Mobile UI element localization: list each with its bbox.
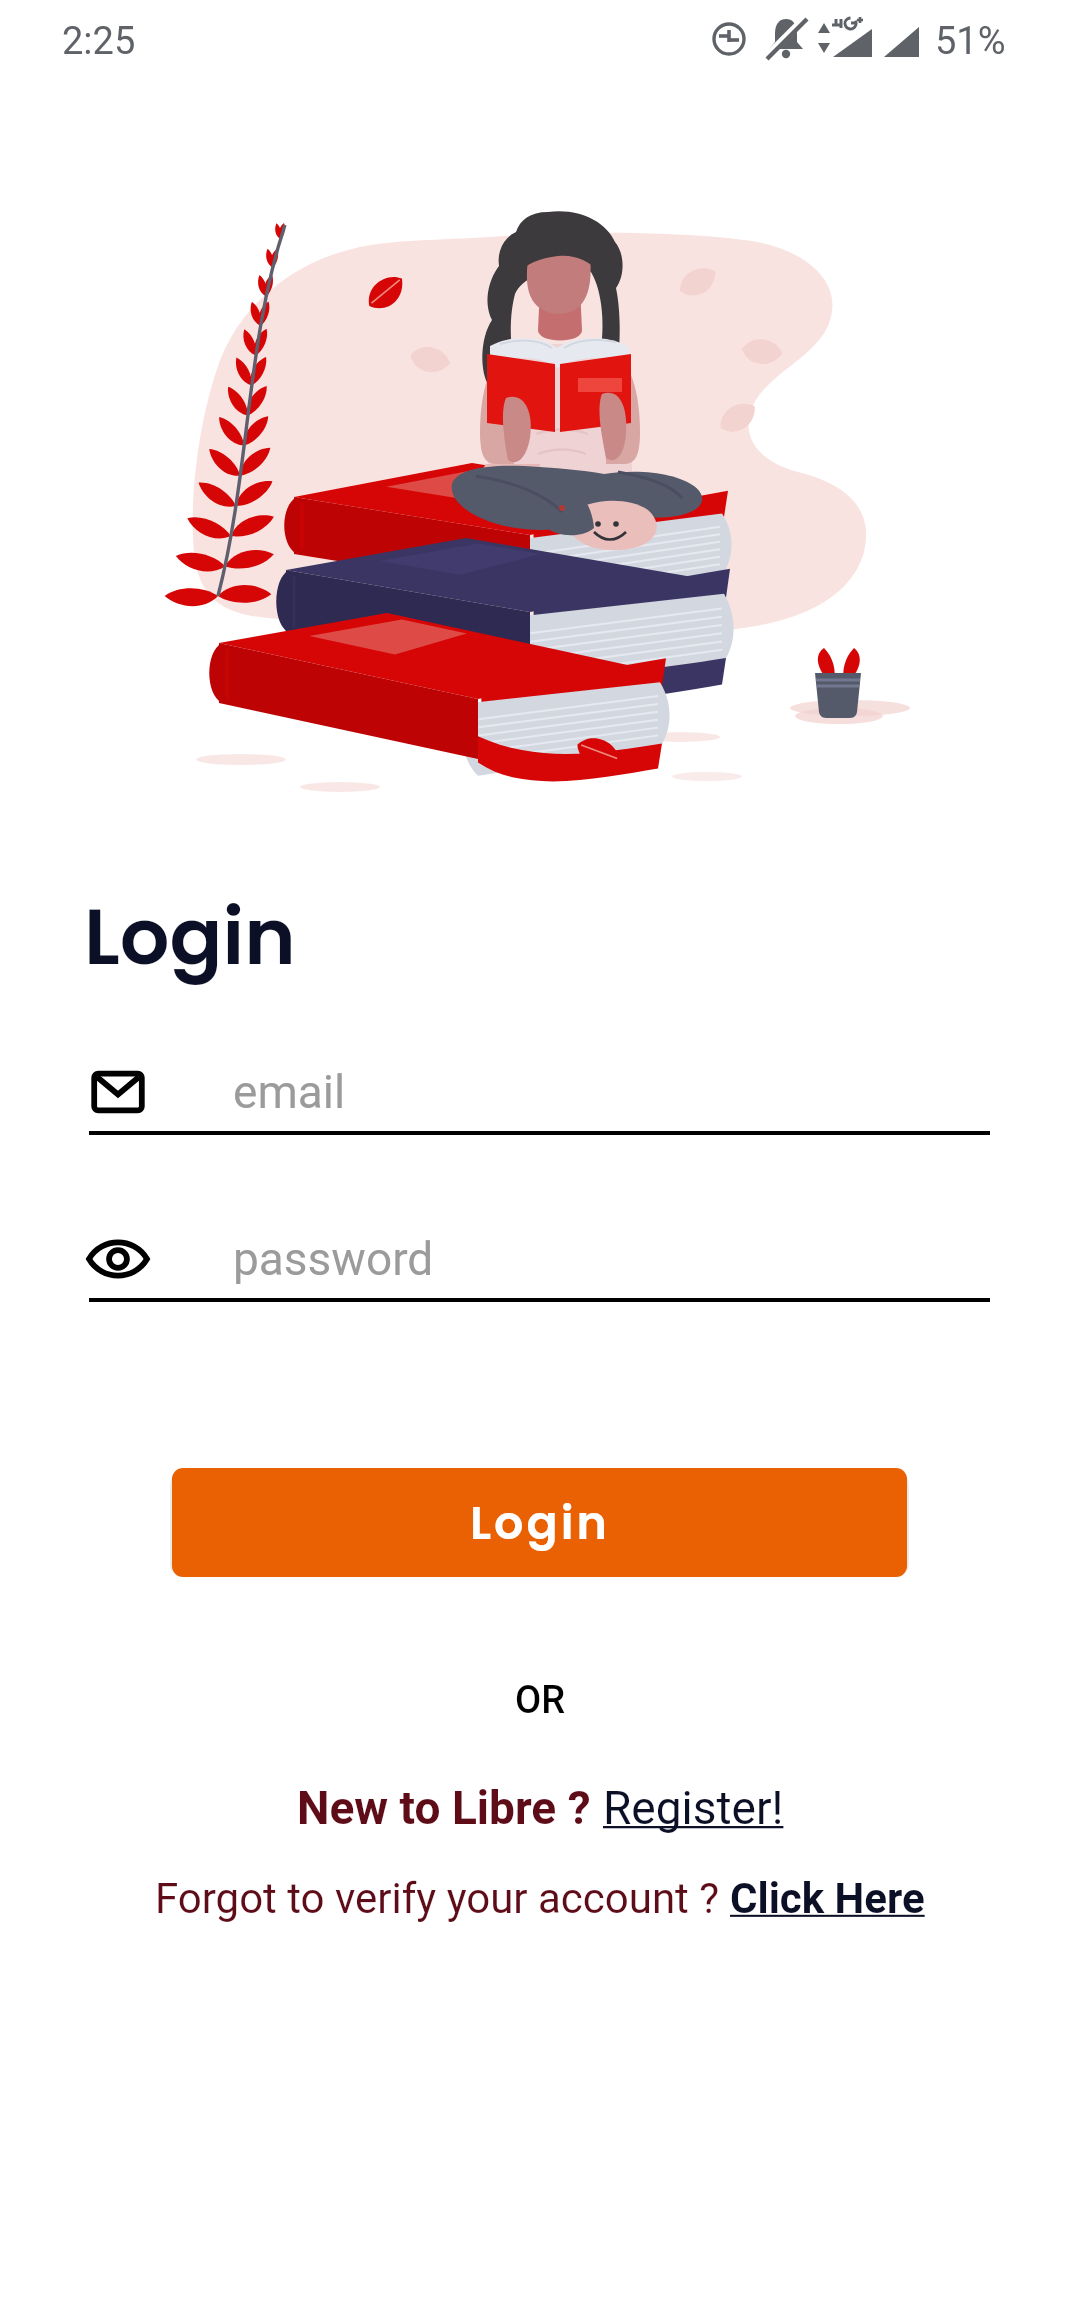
staticText: Click Here <box>730 1874 925 1923</box>
staticText: email <box>233 1065 346 1119</box>
button[interactable]: New to Libre ? <box>0 1781 1080 1835</box>
button[interactable]: Login <box>172 1468 907 1577</box>
staticText: Register! <box>603 1781 784 1835</box>
staticText: password <box>233 1232 434 1286</box>
staticText: Forgot to verify your account ? <box>155 1874 730 1923</box>
button[interactable]: Show password <box>89 1234 147 1284</box>
button[interactable]: Forgot to verify your account ? <box>0 1874 1080 1923</box>
staticText: 51% <box>935 19 1006 64</box>
button[interactable]: Email <box>89 1067 147 1117</box>
staticText: Login <box>470 1491 610 1555</box>
staticText: 2:25 <box>62 19 136 64</box>
staticText: New to Libre ? <box>297 1781 603 1835</box>
staticText: Login <box>84 882 296 991</box>
staticText: OR <box>515 1678 565 1723</box>
